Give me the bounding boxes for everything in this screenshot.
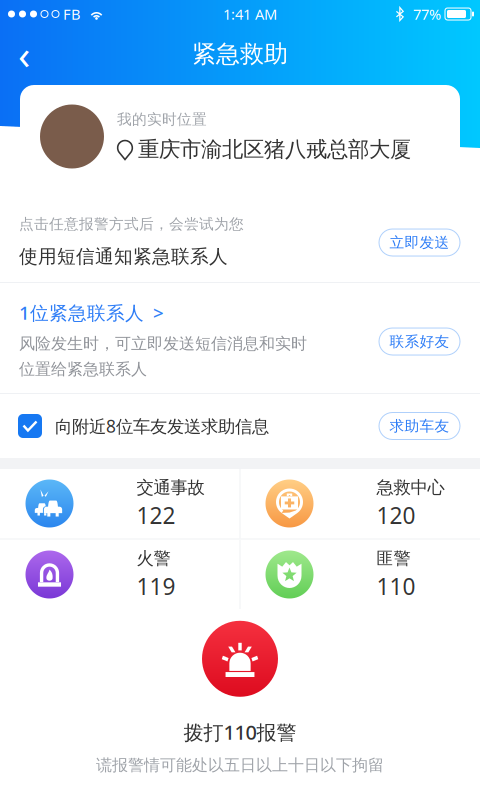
staticText: FB — [63, 4, 81, 24]
staticText: 求助车友 — [389, 417, 449, 435]
staticText: 位置给紧急联系人 — [19, 359, 147, 379]
button[interactable]: 立即发送 — [379, 229, 460, 256]
staticText: 立即发送 — [389, 233, 449, 251]
staticText: 联系好友 — [389, 332, 449, 350]
button[interactable]: 急救中心 — [240, 468, 479, 538]
staticText: 我的实时位置 — [117, 110, 207, 128]
button[interactable]: 向附近车友发送求助信息 — [18, 414, 42, 438]
staticText: 火警 — [136, 548, 170, 569]
staticText: 风险发生时，可立即发送短信消息和实时 — [19, 334, 307, 353]
button[interactable]: 交通事故 — [0, 468, 239, 538]
staticText: 使用短信通知紧急联系人 — [19, 245, 228, 268]
staticText: 紧急救助 — [192, 39, 288, 69]
staticText: > — [153, 300, 164, 325]
staticText: 77% — [413, 4, 441, 24]
button[interactable]: 返回 — [0, 32, 48, 76]
button[interactable]: 匪警 — [240, 539, 479, 609]
button[interactable]: 联系好友 — [379, 328, 460, 355]
staticText: 急救中心 — [376, 477, 444, 498]
button[interactable]: 火警 — [0, 539, 239, 609]
button[interactable]: 求助车友 — [379, 412, 460, 439]
staticText: 拨打110报警 — [183, 719, 296, 745]
staticText: 交通事故 — [136, 477, 204, 498]
staticText: 匪警 — [376, 548, 410, 569]
staticText: 重庆市渝北区猪八戒总部大厦 — [138, 136, 411, 163]
staticText: 谎报警情可能处以五日以上十日以下拘留 — [96, 755, 384, 775]
button[interactable]: 拨打110报警 — [202, 621, 278, 697]
staticText: 点击任意报警方式后，会尝试为您 — [19, 215, 244, 233]
staticText: 110 — [376, 571, 415, 601]
staticText: 119 — [136, 571, 175, 601]
staticText: ‹ — [18, 27, 30, 80]
staticText: 1:41 AM — [223, 4, 277, 24]
staticText: 120 — [376, 500, 415, 530]
staticText: 1位紧急联系人 — [19, 300, 144, 325]
staticText: 向附近8位车友发送求助信息 — [55, 414, 269, 437]
staticText: 122 — [136, 500, 175, 530]
